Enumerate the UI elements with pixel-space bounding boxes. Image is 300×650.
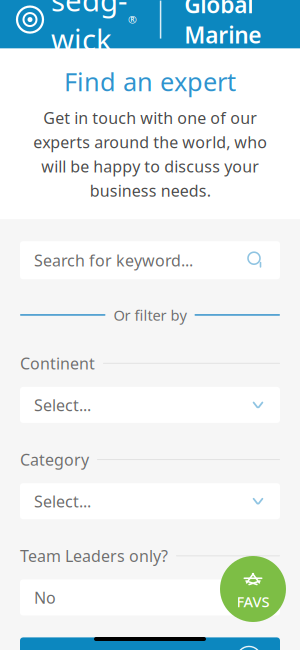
staticText: FAVS <box>236 592 269 611</box>
button[interactable]: Select... <box>20 483 280 519</box>
button[interactable]: Search for keyword... <box>20 241 280 279</box>
staticText: Global Marine <box>184 0 261 50</box>
staticText: No <box>34 587 56 608</box>
staticText: Select... <box>34 491 91 512</box>
staticText: sedgwick <box>51 0 127 59</box>
staticText: Find an expert <box>64 65 236 98</box>
staticText: Search for keyword... <box>34 250 193 271</box>
button[interactable]: No <box>20 579 280 615</box>
staticText: Or filter by <box>113 305 186 325</box>
button[interactable]: Select... <box>20 387 280 423</box>
staticText: Team Leaders only? <box>20 545 168 566</box>
staticText: Category <box>20 449 89 470</box>
staticText: ® <box>128 12 137 27</box>
staticText: Continent <box>20 353 95 374</box>
button[interactable]: Favourites <box>220 556 286 622</box>
staticText: Select... <box>34 394 91 415</box>
staticText: Get in touch with one of our experts aro… <box>33 107 267 201</box>
button[interactable]: Search <box>20 637 280 650</box>
